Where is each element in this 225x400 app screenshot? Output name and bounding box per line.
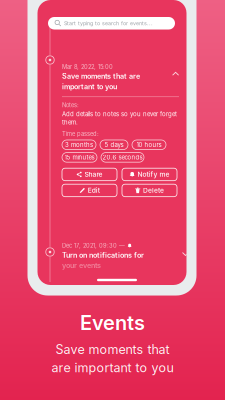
staticText: 5 days	[104, 141, 123, 148]
staticText: your events	[62, 261, 101, 270]
staticText: Add details to notes so you never forget	[62, 110, 177, 118]
staticText: important to you	[62, 82, 117, 91]
staticText: Mar 8, 2022, 15:00	[62, 63, 113, 70]
staticText: 20.6 seconds	[102, 154, 142, 161]
staticText: Save moments that	[55, 342, 169, 357]
button[interactable]: Start typing to search for events...	[48, 17, 175, 29]
button[interactable]: Notify me	[122, 168, 177, 181]
staticText: 15 minutes	[64, 154, 94, 161]
staticText: Time passed:	[62, 130, 99, 137]
staticText: Turn on notifications for	[62, 251, 144, 259]
staticText: Share	[84, 170, 102, 178]
staticText: Edit	[88, 186, 100, 194]
staticText: Events	[80, 311, 145, 335]
staticText: Notify me	[137, 170, 169, 178]
staticText: Save moments that are	[62, 72, 140, 81]
staticText: Notes:	[62, 102, 79, 108]
staticText: 10 hours	[136, 141, 161, 148]
staticText: them.	[62, 119, 78, 126]
staticText: are important to you	[51, 360, 173, 375]
staticText: Delete	[143, 186, 164, 194]
staticText: Dec 17, 2021, 09:30 —	[62, 242, 125, 249]
staticText: Start typing to search for events...	[64, 20, 153, 26]
button[interactable]: Delete	[122, 184, 177, 197]
button[interactable]: Edit	[62, 184, 117, 197]
button[interactable]: Share	[62, 168, 117, 181]
staticText: 3 months	[65, 141, 93, 148]
